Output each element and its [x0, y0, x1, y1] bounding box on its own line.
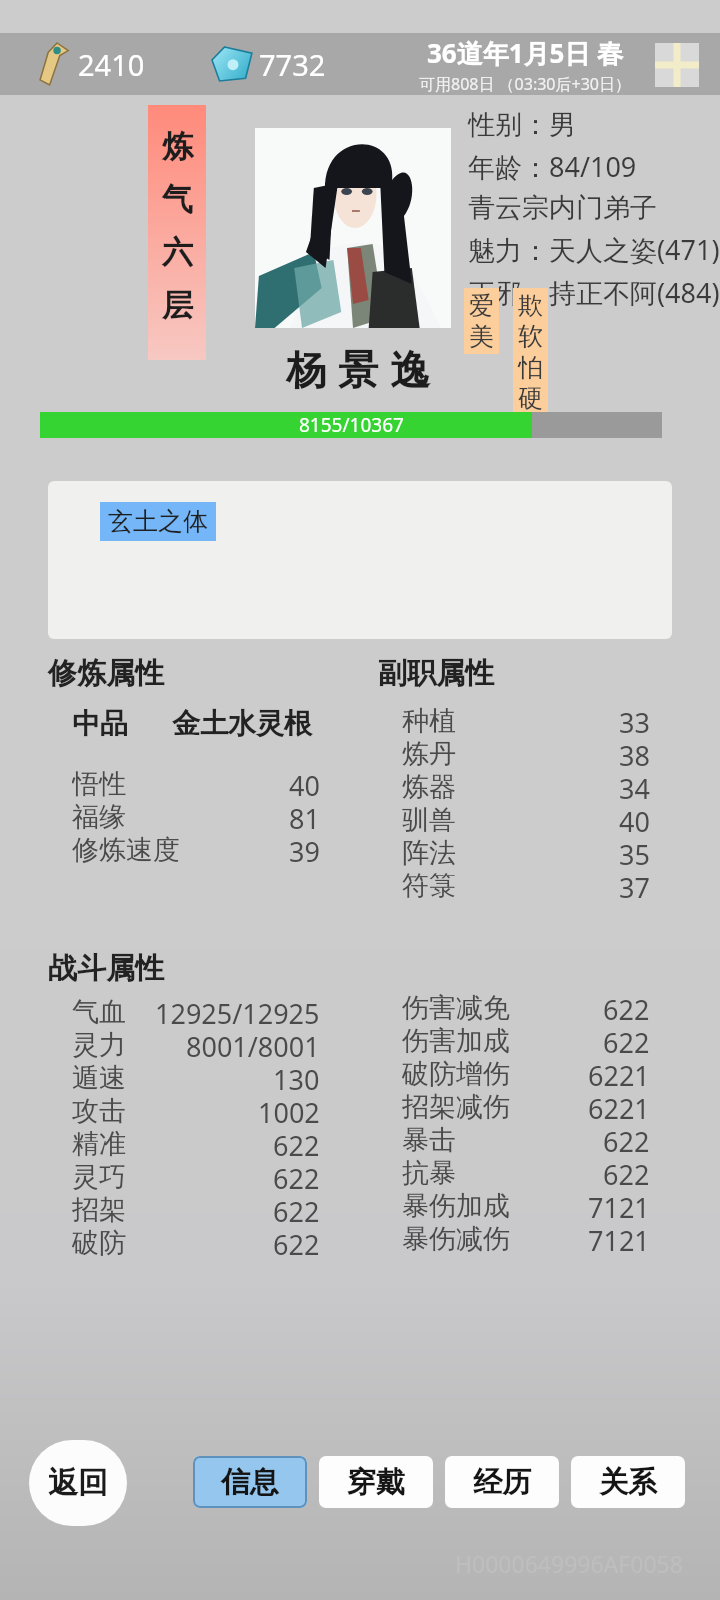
staticText: 暴击 [402, 1123, 456, 1156]
staticText: 年龄：84/109 [468, 148, 637, 185]
staticText: 破防 [72, 1226, 126, 1259]
staticText: 622 [603, 1024, 650, 1057]
staticText: 暴伤加成 [402, 1189, 510, 1222]
staticText: 金土水灵根 [172, 706, 312, 741]
staticText: 符箓 [402, 869, 456, 902]
button[interactable]: 遁速 [72, 1061, 320, 1094]
staticText: 7732 [259, 45, 326, 84]
staticText: 中品 [72, 706, 128, 741]
staticText: 622 [273, 1226, 320, 1259]
staticText: 种植 [402, 704, 456, 737]
staticText: 福缘 [72, 800, 126, 833]
staticText: 81 [289, 800, 320, 833]
button[interactable]: 气血 [72, 995, 320, 1028]
staticText: 37 [619, 869, 650, 902]
staticText: 8001/8001 [186, 1028, 320, 1061]
staticText: 爱 [469, 290, 494, 321]
staticText: 魅力：天人之姿(471) [468, 231, 720, 268]
staticText: 硬 [518, 383, 543, 414]
staticText: 34 [619, 770, 650, 803]
staticText: 返回 [48, 1464, 108, 1502]
staticText: 招架 [72, 1193, 126, 1226]
button[interactable]: 伤害加成 [402, 1024, 650, 1057]
button[interactable]: 经历 [445, 1456, 559, 1508]
staticText: 欺 [518, 290, 543, 321]
staticText: 破防增伤 [402, 1057, 510, 1090]
staticText: 622 [273, 1127, 320, 1160]
staticText: 战斗属性 [48, 950, 164, 987]
staticText: 阵法 [402, 836, 456, 869]
staticText: 青云宗内门弟子 [468, 191, 657, 225]
staticText: 伤害加成 [402, 1024, 510, 1057]
button[interactable]: 暴伤加成 [402, 1189, 650, 1222]
staticText: 2410 [78, 45, 145, 84]
button[interactable]: 灵力 [72, 1028, 320, 1061]
staticText: 灵巧 [72, 1160, 126, 1193]
staticText: 招架减伤 [402, 1090, 510, 1123]
button[interactable]: 福缘 [72, 800, 320, 833]
staticText: 6221 [588, 1090, 650, 1123]
staticText: 遁速 [72, 1061, 126, 1094]
staticText: 6221 [588, 1057, 650, 1090]
button[interactable]: 炼 [148, 105, 206, 360]
staticText: 经历 [473, 1464, 531, 1501]
staticText: 副职属性 [378, 655, 494, 692]
button[interactable]: 欺 [518, 290, 543, 414]
button[interactable]: 破防 [72, 1226, 320, 1259]
button[interactable]: 种植 [402, 704, 650, 737]
staticText: 炼丹 [402, 737, 456, 770]
button[interactable]: 精准 [72, 1127, 320, 1160]
staticText: 美 [469, 321, 494, 352]
button[interactable]: 攻击 [72, 1094, 320, 1127]
button[interactable]: 悟性 [72, 767, 320, 800]
button[interactable]: 炼丹 [402, 737, 650, 770]
staticText: 炼器 [402, 770, 456, 803]
staticText: 35 [619, 836, 650, 869]
staticText: 7121 [588, 1189, 650, 1222]
button[interactable]: 玄土之体 [108, 506, 208, 537]
staticText: 39 [289, 833, 320, 866]
button[interactable]: 符箓 [402, 869, 650, 902]
button[interactable]: 暴伤减伤 [402, 1222, 650, 1255]
staticText: 36道年1月5日 春 [427, 35, 624, 71]
button[interactable]: 穿戴 [319, 1456, 433, 1508]
button[interactable]: 炼器 [402, 770, 650, 803]
button[interactable]: 暴击 [402, 1123, 650, 1156]
button[interactable]: 招架 [72, 1193, 320, 1226]
button[interactable]: 抗暴 [402, 1156, 650, 1189]
button[interactable]: 驯兽 [402, 803, 650, 836]
button[interactable]: 破防增伤 [402, 1057, 650, 1090]
staticText: 可用808日 （03:30后+30日） [419, 73, 631, 95]
button[interactable]: 伤害减免 [402, 991, 650, 1024]
button[interactable]: 灵巧 [72, 1160, 320, 1193]
button[interactable]: 8155/10367 [40, 412, 662, 438]
staticText: 40 [289, 767, 320, 800]
button[interactable]: 关系 [571, 1456, 685, 1508]
button[interactable]: 爱 [469, 290, 494, 352]
button[interactable]: 阵法 [402, 836, 650, 869]
button[interactable]: Character portrait [255, 128, 451, 328]
button[interactable]: 信息 [193, 1456, 307, 1508]
button[interactable]: 修炼速度 [72, 833, 320, 866]
staticText: 修炼属性 [48, 655, 164, 692]
staticText: 灵力 [72, 1028, 126, 1061]
staticText: 38 [619, 737, 650, 770]
staticText: 修炼速度 [72, 833, 180, 866]
staticText: 气 [162, 180, 193, 219]
staticText: 炼 [162, 127, 193, 166]
staticText: 正邪：持正不阿(484) [468, 274, 720, 311]
staticText: 622 [273, 1160, 320, 1193]
staticText: 景 [338, 345, 378, 395]
staticText: 悟性 [72, 767, 126, 800]
staticText: 气血 [72, 995, 126, 1028]
staticText: 40 [619, 803, 650, 836]
button[interactable]: 玄土之体 [48, 481, 672, 639]
button[interactable]: 招架减伤 [402, 1090, 650, 1123]
button[interactable]: 返回 [29, 1440, 127, 1526]
staticText: 伤害减免 [402, 991, 510, 1024]
staticText: 性别：男 [468, 108, 576, 142]
staticText: 逸 [390, 345, 430, 395]
staticText: 攻击 [72, 1094, 126, 1127]
button[interactable]: Add [655, 43, 699, 87]
staticText: 信息 [221, 1464, 279, 1501]
